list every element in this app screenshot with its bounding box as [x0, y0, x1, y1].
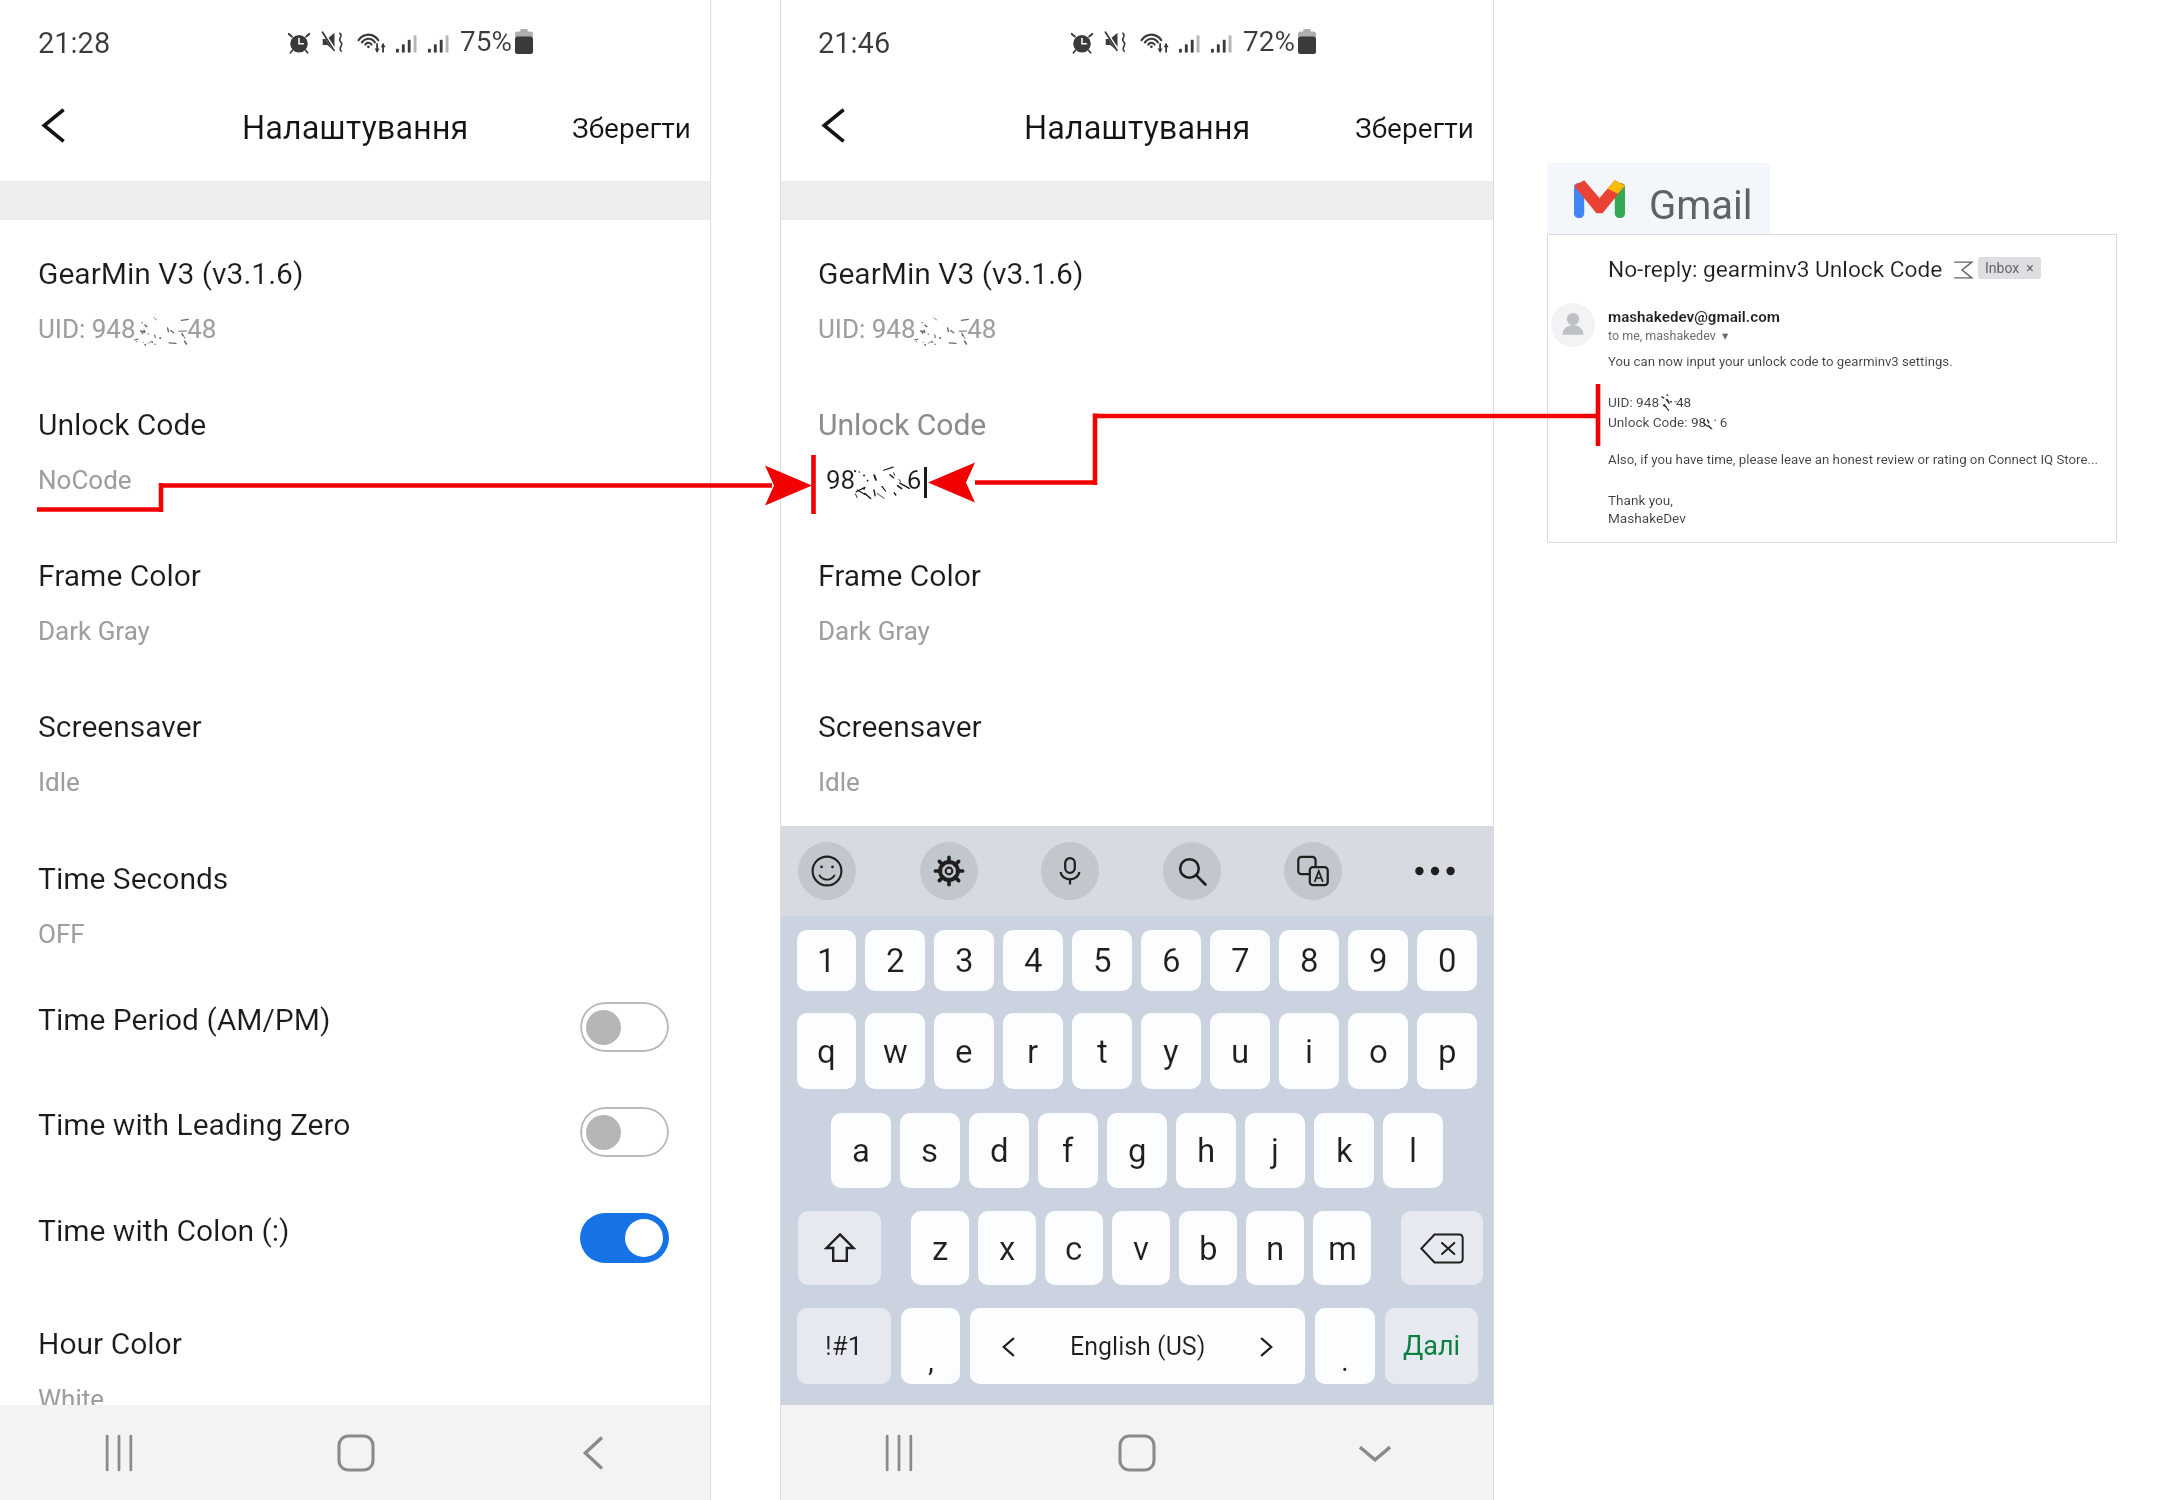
staticText: x [999, 1229, 1016, 1268]
staticText: UID: 948 48 [38, 314, 217, 344]
staticText: 9 [1369, 941, 1388, 980]
button[interactable]: p [1417, 1013, 1477, 1089]
staticText: Also, if you have time, please leave an … [1608, 452, 2098, 468]
button[interactable]: Frame Color [0, 540, 711, 680]
button[interactable]: Translate [1284, 842, 1342, 900]
button[interactable]: Home [237, 1405, 474, 1500]
button[interactable]: Time Seconds [0, 843, 711, 983]
staticText: 98 6 [826, 465, 922, 495]
staticText: b [1199, 1229, 1218, 1268]
button[interactable]: Hour Color [0, 1308, 711, 1448]
button[interactable]: o [1348, 1013, 1408, 1089]
button[interactable]: More options [1406, 842, 1464, 900]
button[interactable]: , [901, 1308, 960, 1384]
staticText: i [1305, 1032, 1314, 1071]
button[interactable]: Далі [1385, 1308, 1478, 1384]
button[interactable]: Recent apps [0, 1405, 237, 1500]
button[interactable]: Back [474, 1405, 711, 1500]
staticText: Frame Color [38, 558, 201, 593]
button[interactable]: GearMin V3 (v3.1.6) [780, 238, 1494, 378]
button[interactable]: Time with Colon (:) [0, 1187, 711, 1273]
button[interactable]: r [1003, 1013, 1063, 1089]
button[interactable]: f [1038, 1113, 1098, 1188]
staticText: p [1438, 1032, 1457, 1071]
button[interactable]: i [1279, 1013, 1339, 1089]
staticText: Далі [1403, 1330, 1461, 1362]
button[interactable]: Keyboard settings [920, 842, 978, 900]
button[interactable]: 1 [797, 930, 856, 991]
button[interactable]: Frame Color [780, 540, 1494, 680]
button[interactable]: Emoji [798, 842, 856, 900]
button[interactable]: Search [1163, 842, 1221, 900]
button[interactable]: Screensaver [780, 691, 1494, 831]
staticText: to me, mashakedev ▾ [1608, 328, 1729, 343]
button[interactable]: Backspace [1401, 1211, 1483, 1285]
button[interactable]: l [1383, 1113, 1443, 1188]
button[interactable]: g [1107, 1113, 1167, 1188]
staticText: r [1027, 1032, 1039, 1071]
staticText: g [1128, 1131, 1147, 1170]
button[interactable]: Зберегти [1343, 100, 1486, 157]
button[interactable]: n [1246, 1211, 1304, 1285]
button[interactable]: 7 [1210, 930, 1270, 991]
staticText: k [1336, 1131, 1353, 1170]
button[interactable]: Back [17, 89, 89, 161]
button[interactable]: Screensaver [0, 691, 711, 831]
staticText: 75% [460, 25, 512, 58]
button[interactable]: j [1245, 1113, 1305, 1188]
button[interactable]: h [1176, 1113, 1236, 1188]
staticText: Dark Gray [818, 616, 930, 646]
button[interactable]: Unlock Code [780, 389, 1494, 529]
staticText: 5 [1093, 941, 1112, 980]
staticText: 21:46 [818, 26, 891, 60]
button[interactable]: Unlock Code [0, 389, 711, 529]
button[interactable]: k [1314, 1113, 1374, 1188]
staticText: m [1328, 1229, 1357, 1268]
button[interactable]: Time with Leading Zero [0, 1081, 711, 1167]
button[interactable]: Hide keyboard [1256, 1405, 1494, 1500]
button[interactable]: Recent apps [780, 1405, 1018, 1500]
button[interactable]: 2 [865, 930, 925, 991]
button[interactable]: 5 [1072, 930, 1132, 991]
staticText: Time with Leading Zero [38, 1107, 351, 1142]
button[interactable]: s [900, 1113, 960, 1188]
button[interactable]: u [1210, 1013, 1270, 1089]
button[interactable]: w [865, 1013, 925, 1089]
button[interactable]: . [1315, 1308, 1375, 1384]
button[interactable]: Зберегти [560, 100, 703, 157]
button[interactable]: Shift [798, 1211, 881, 1285]
button[interactable]: b [1179, 1211, 1237, 1285]
button[interactable]: Voice input [1041, 842, 1099, 900]
button[interactable]: y [1141, 1013, 1201, 1089]
button[interactable]: 9 [1348, 930, 1408, 991]
staticText: GearMin V3 (v3.1.6) [38, 256, 304, 291]
button[interactable]: c [1045, 1211, 1103, 1285]
staticText: 3 [955, 941, 974, 980]
button[interactable]: z [911, 1211, 969, 1285]
button[interactable]: Time Period (AM/PM) [0, 976, 711, 1062]
button[interactable]: 3 [934, 930, 994, 991]
button[interactable]: 6 [1141, 930, 1201, 991]
button[interactable]: a [831, 1113, 891, 1188]
button[interactable]: x [978, 1211, 1036, 1285]
button[interactable]: d [969, 1113, 1029, 1188]
button[interactable]: !#1 [797, 1308, 891, 1384]
staticText: n [1266, 1229, 1285, 1268]
button[interactable]: English (US) [970, 1308, 1305, 1384]
staticText: d [990, 1131, 1009, 1170]
button[interactable]: 8 [1279, 930, 1339, 991]
button[interactable]: 4 [1003, 930, 1063, 991]
staticText: c [1065, 1229, 1083, 1268]
button[interactable]: t [1072, 1013, 1132, 1089]
staticText: Налаштування [242, 109, 469, 147]
button[interactable]: v [1112, 1211, 1170, 1285]
staticText: Idle [38, 767, 80, 797]
button[interactable]: e [934, 1013, 994, 1089]
button[interactable]: q [797, 1013, 856, 1089]
button[interactable]: m [1313, 1211, 1371, 1285]
button[interactable]: Home [1018, 1405, 1256, 1500]
button[interactable]: GearMin V3 (v3.1.6) [0, 238, 711, 378]
staticText: w [883, 1032, 908, 1071]
button[interactable]: 0 [1417, 930, 1477, 991]
button[interactable]: Back [797, 89, 869, 161]
